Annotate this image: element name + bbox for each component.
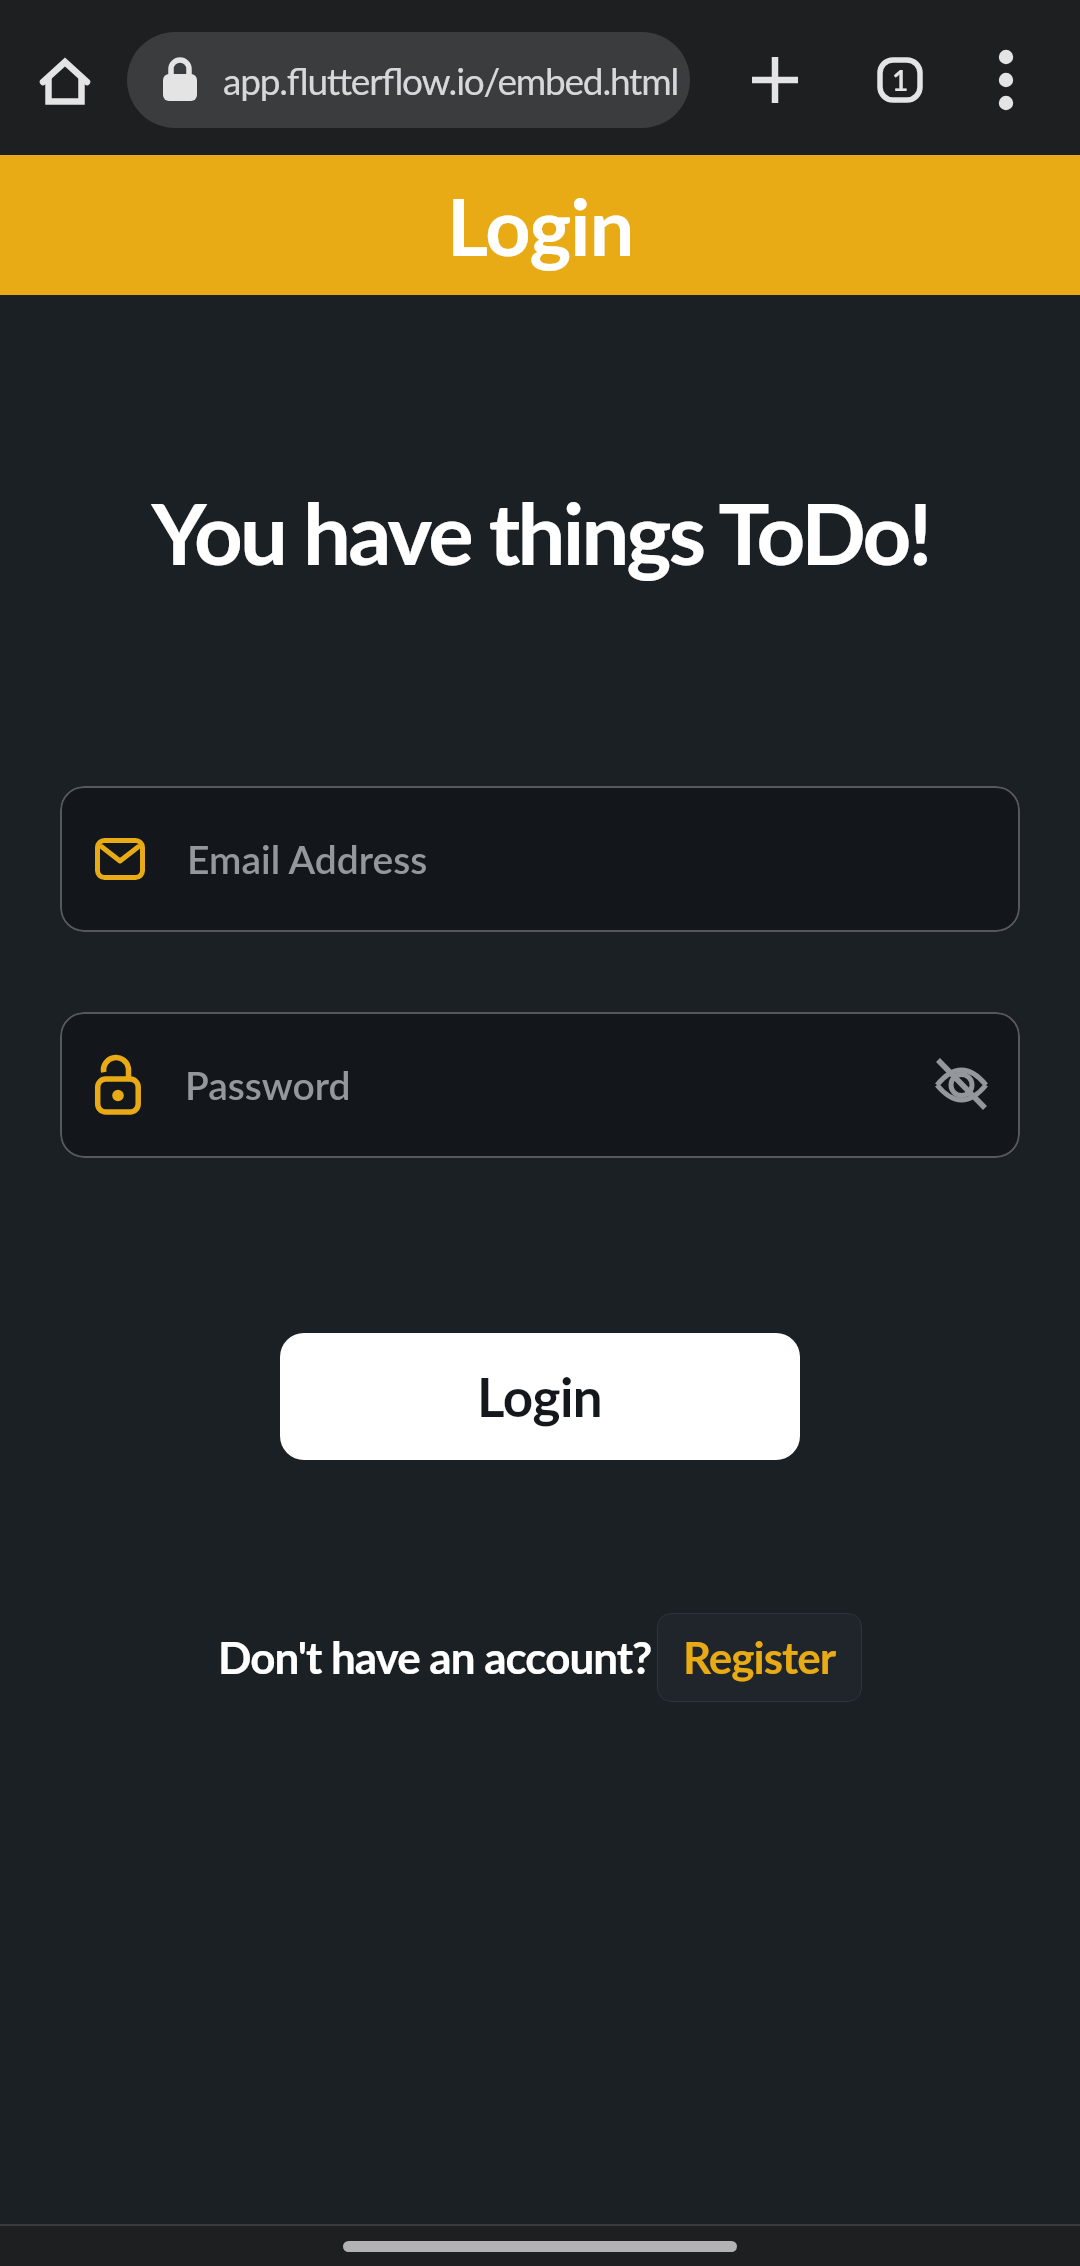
staticText: Login bbox=[447, 178, 634, 273]
button[interactable]: Password bbox=[60, 1012, 1020, 1158]
button[interactable] bbox=[38, 53, 92, 107]
button[interactable]: app.flutterflow.io/embed.html bbox=[127, 32, 690, 128]
staticText: Login bbox=[477, 1365, 603, 1429]
button[interactable]: Email Address bbox=[60, 786, 1020, 932]
staticText: 1 bbox=[892, 63, 909, 97]
staticText: Don't have an account? bbox=[218, 1631, 652, 1684]
button[interactable]: Register bbox=[657, 1613, 862, 1702]
staticText: Email Address bbox=[187, 836, 428, 883]
staticText: app.flutterflow.io/embed.html bbox=[223, 58, 678, 102]
button[interactable] bbox=[979, 53, 1033, 107]
button[interactable] bbox=[748, 53, 802, 107]
staticText: Password bbox=[185, 1062, 351, 1109]
button[interactable]: 1 bbox=[873, 53, 927, 107]
staticText: You have things ToDo! bbox=[151, 481, 930, 583]
staticText: Register bbox=[683, 1631, 836, 1684]
button[interactable]: Login bbox=[280, 1333, 800, 1460]
